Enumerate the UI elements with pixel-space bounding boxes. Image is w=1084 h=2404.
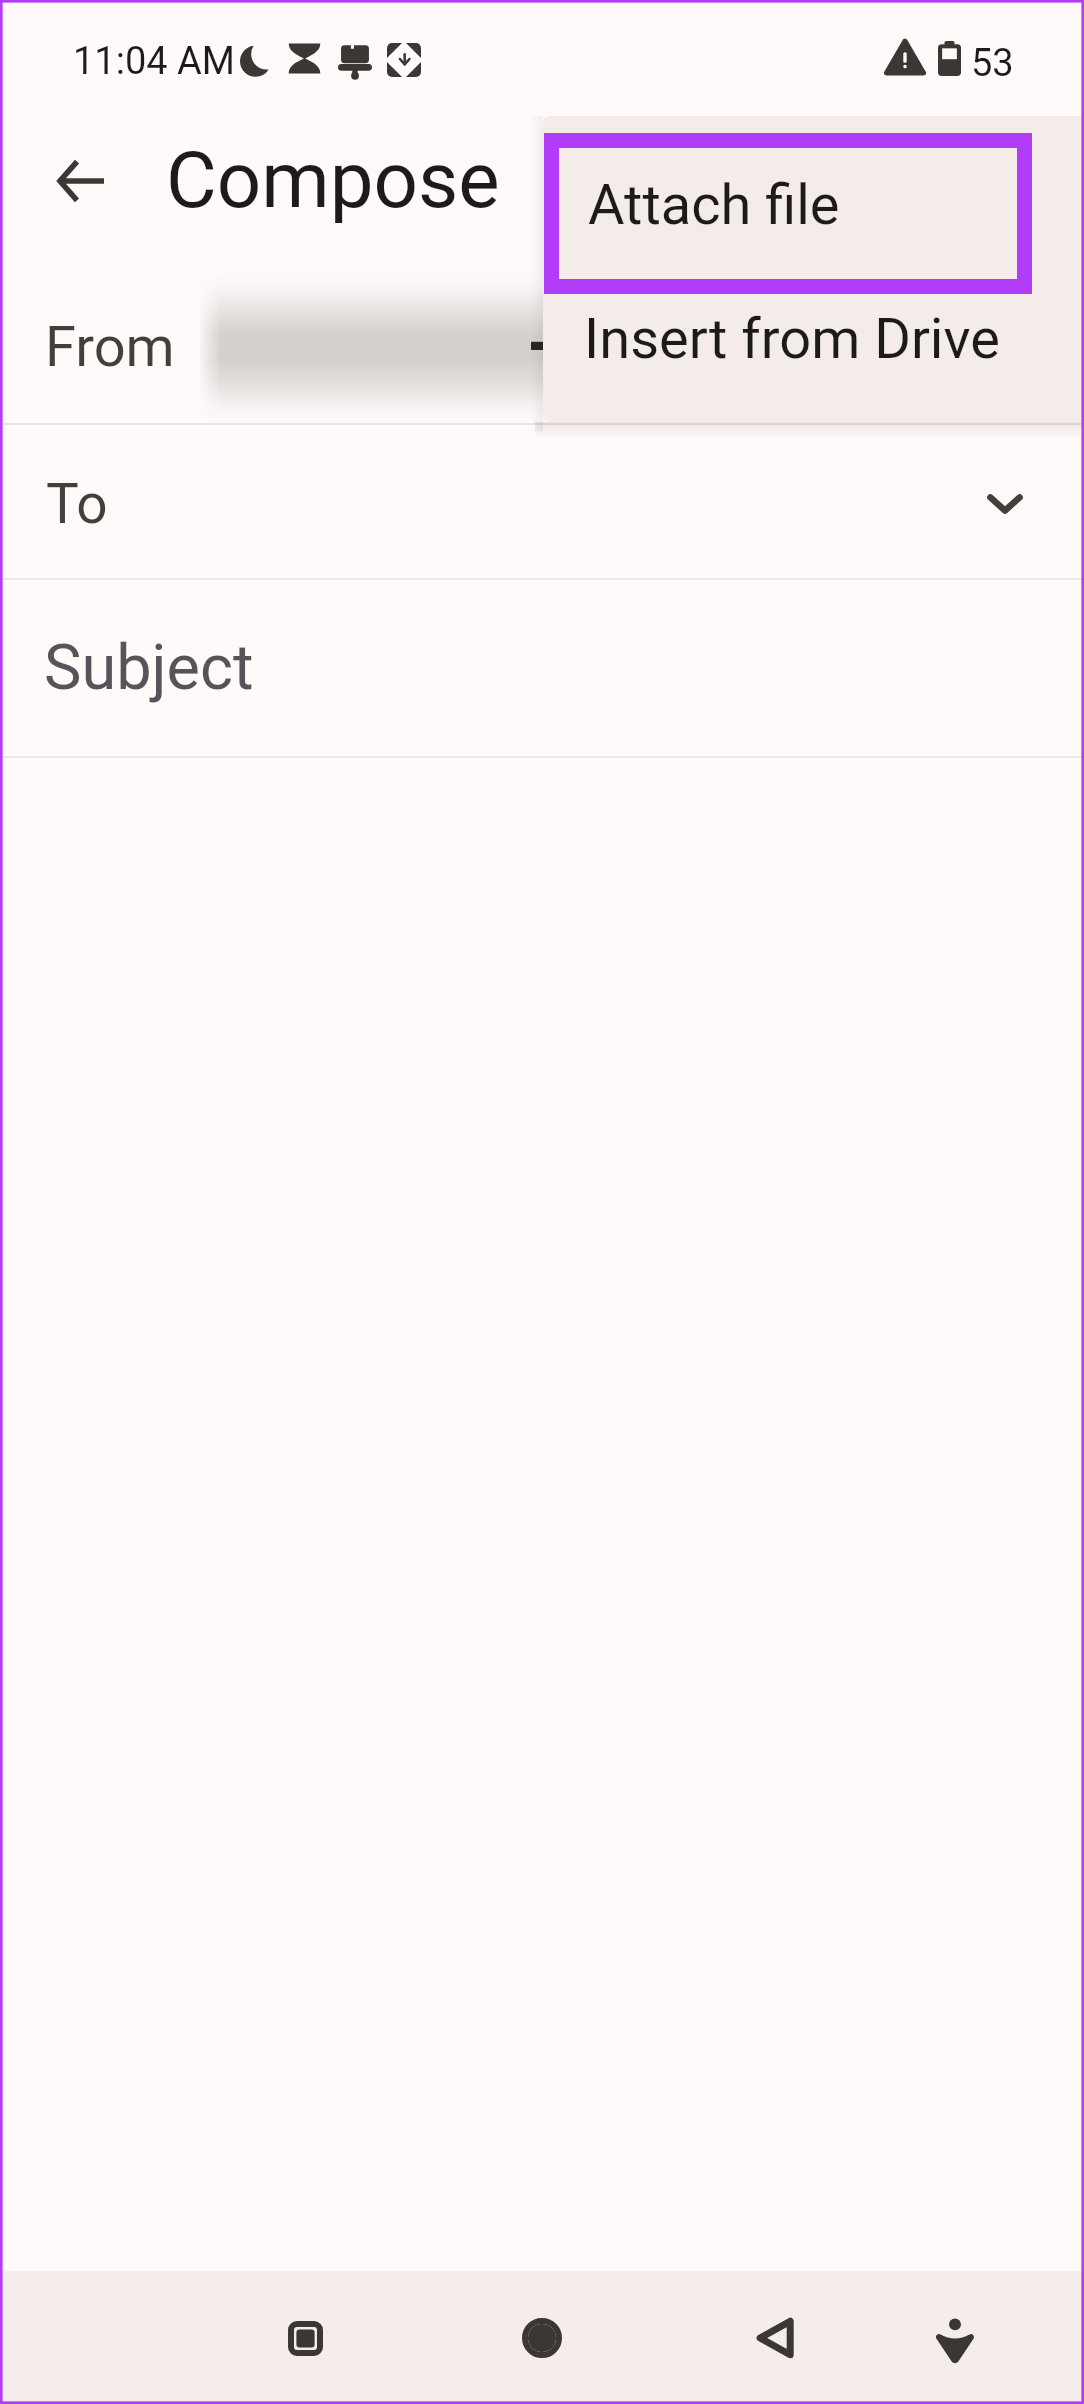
staticText: Compose bbox=[166, 135, 500, 226]
button[interactable]: Show Cc and Bcc bbox=[953, 452, 1057, 556]
staticText: From bbox=[45, 314, 175, 380]
staticText: Subject bbox=[44, 631, 254, 705]
staticText: Insert from Drive bbox=[584, 306, 1000, 372]
button[interactable]: Attach file bbox=[544, 133, 1032, 294]
button[interactable]: Recent apps bbox=[250, 2283, 360, 2393]
staticText: 11:04 AM bbox=[73, 39, 236, 84]
button[interactable]: From bbox=[0, 274, 1084, 423]
button[interactable]: To bbox=[0, 425, 1084, 578]
button[interactable]: Back bbox=[720, 2283, 830, 2393]
button[interactable]: Home bbox=[487, 2283, 597, 2393]
staticText: To bbox=[46, 472, 108, 536]
button[interactable]: Insert from Drive bbox=[544, 302, 1081, 420]
button[interactable]: Subject bbox=[0, 580, 1084, 756]
staticText: 53 bbox=[971, 41, 1014, 86]
staticText: Attach file bbox=[588, 172, 840, 238]
button[interactable]: Accessibility menu bbox=[900, 2283, 1010, 2393]
button[interactable]: Back bbox=[27, 127, 135, 235]
